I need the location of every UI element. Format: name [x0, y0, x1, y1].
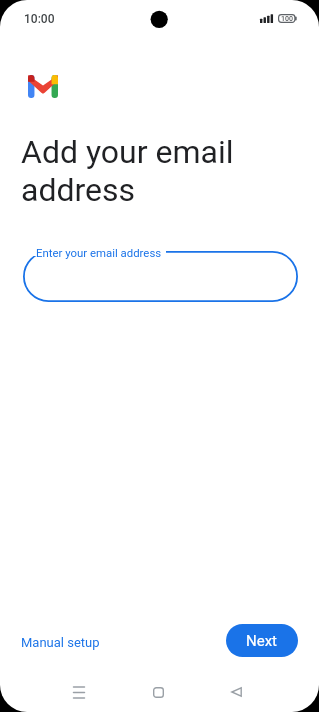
- staticText: Next: [246, 632, 278, 650]
- staticText: Enter your email address: [36, 246, 162, 259]
- staticText: 10:00: [24, 12, 55, 26]
- staticText: Manual setup: [21, 635, 100, 650]
- staticText: Add your email address: [21, 133, 271, 209]
- staticText: 100: [281, 15, 293, 23]
- button[interactable]: Next: [226, 624, 298, 657]
- button[interactable]: Home: [143, 677, 173, 707]
- button[interactable]: Back: [221, 677, 251, 707]
- button[interactable]: Recent apps: [64, 677, 94, 707]
- button[interactable]: Manual setup: [9, 628, 112, 657]
